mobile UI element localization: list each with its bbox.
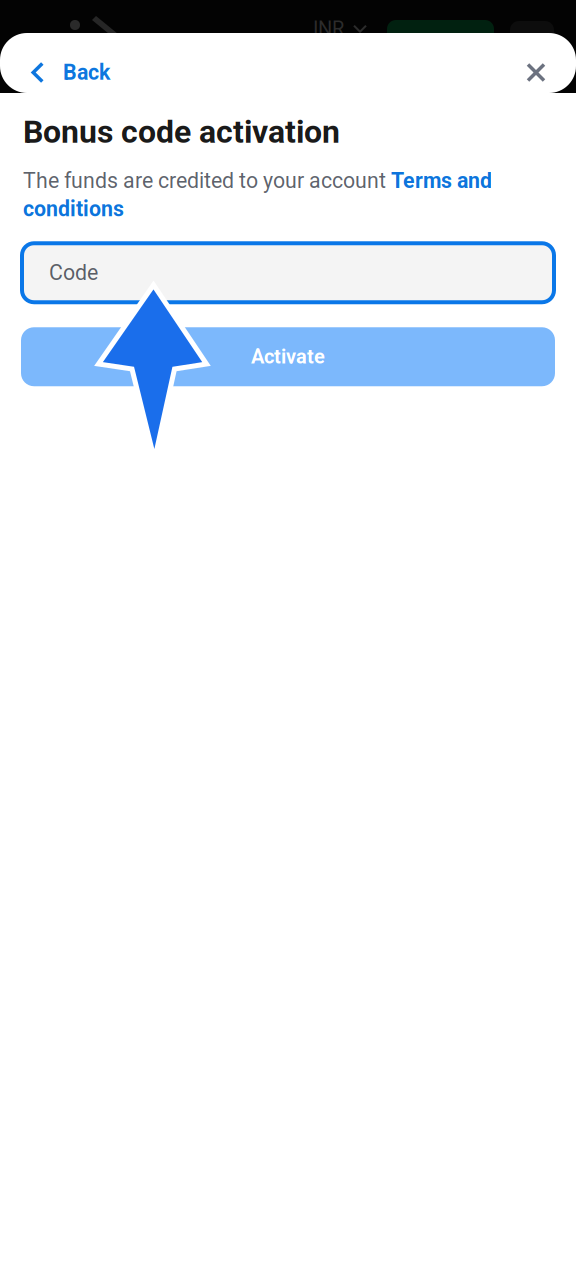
staticText: Bonus code activation bbox=[23, 113, 340, 150]
staticText: The funds are credited to your account T… bbox=[23, 168, 492, 221]
button[interactable]: Back bbox=[0, 52, 128, 93]
button[interactable]: Close bbox=[506, 54, 576, 90]
button[interactable]: Activate bbox=[21, 327, 555, 386]
staticText: Back bbox=[63, 60, 110, 85]
staticText: Code bbox=[49, 260, 98, 285]
staticText: INR bbox=[313, 17, 344, 40]
staticText: Activate bbox=[251, 345, 325, 368]
